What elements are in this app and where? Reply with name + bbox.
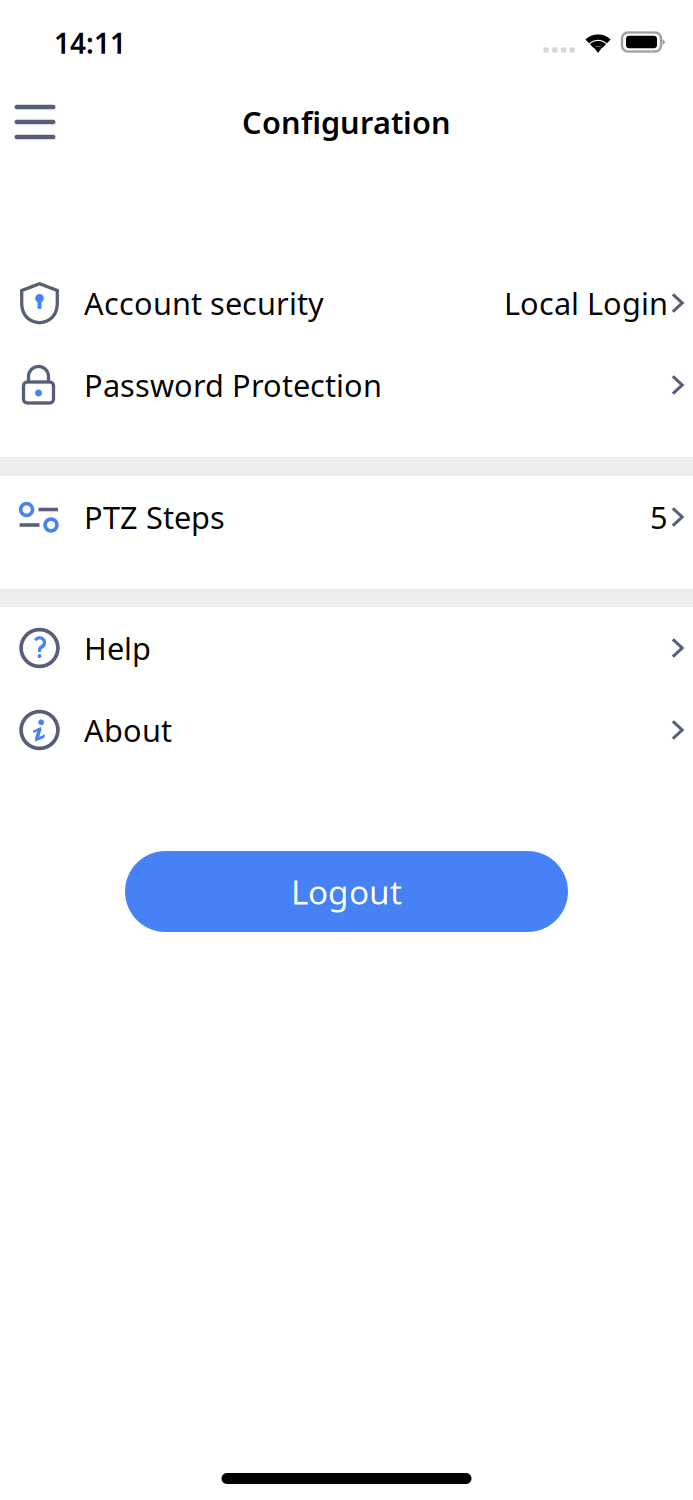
- staticText: Logout: [291, 869, 402, 914]
- staticText: Help: [84, 628, 151, 668]
- button[interactable]: Account security: [0, 262, 693, 344]
- staticText: Local Login: [504, 283, 668, 323]
- button[interactable]: Help: [0, 607, 693, 689]
- staticText: 14:11: [54, 24, 126, 62]
- button[interactable]: PTZ Steps: [0, 476, 693, 558]
- staticText: Password Protection: [84, 365, 382, 405]
- button[interactable]: Menu: [6, 92, 64, 152]
- button[interactable]: About: [0, 689, 693, 771]
- staticText: 5: [650, 497, 668, 537]
- button[interactable]: Logout: [125, 851, 568, 932]
- button[interactable]: Password Protection: [0, 344, 693, 426]
- staticText: About: [84, 710, 172, 750]
- staticText: Account security: [84, 283, 324, 323]
- staticText: Configuration: [242, 102, 451, 142]
- staticText: PTZ Steps: [84, 497, 225, 537]
